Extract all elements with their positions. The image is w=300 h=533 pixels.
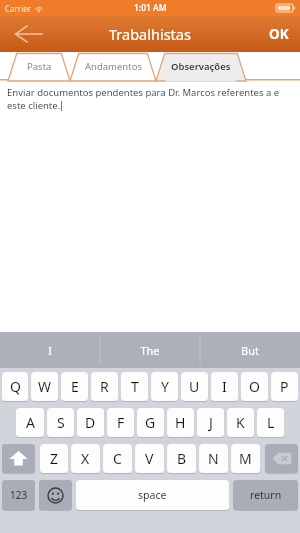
- button[interactable]: Z: [40, 444, 68, 473]
- staticText: 123: [10, 488, 28, 502]
- staticText: But: [241, 343, 259, 358]
- staticText: return: [250, 488, 282, 502]
- button[interactable]: The: [100, 332, 200, 368]
- staticText: S: [57, 413, 65, 432]
- staticText: R: [100, 377, 109, 396]
- staticText: The: [140, 343, 160, 358]
- staticText: K: [236, 413, 245, 432]
- button[interactable]: I: [211, 372, 238, 401]
- button[interactable]: S: [47, 408, 74, 437]
- staticText: D: [85, 413, 96, 432]
- button[interactable]: F: [107, 408, 134, 437]
- button[interactable]: M: [231, 444, 260, 473]
- staticText: Observações: [171, 60, 231, 73]
- staticText: B: [177, 449, 187, 468]
- button[interactable]: I: [0, 332, 100, 368]
- button[interactable]: Shift: [2, 444, 35, 473]
- staticText: E: [71, 377, 79, 396]
- button[interactable]: 123: [2, 480, 35, 510]
- button[interactable]: space: [76, 480, 229, 510]
- button[interactable]: X: [71, 444, 100, 473]
- button[interactable]: Observações: [156, 52, 246, 81]
- staticText: Q: [10, 377, 21, 396]
- staticText: 1:01 AM: [134, 2, 167, 14]
- staticText: Trabalhistas: [109, 24, 191, 44]
- staticText: U: [189, 377, 200, 396]
- staticText: OK: [269, 25, 289, 43]
- button[interactable]: T: [121, 372, 148, 401]
- staticText: G: [145, 413, 156, 432]
- staticText: L: [267, 413, 275, 432]
- button[interactable]: O: [241, 372, 268, 401]
- button[interactable]: P: [271, 372, 298, 401]
- staticText: I: [48, 343, 52, 358]
- staticText: Enviar documentos pendentes para Dr. Mar…: [7, 86, 280, 99]
- button[interactable]: Pasta: [8, 52, 70, 81]
- button[interactable]: N: [199, 444, 228, 473]
- button[interactable]: Andamentos: [70, 52, 156, 81]
- staticText: X: [81, 449, 90, 468]
- button[interactable]: G: [137, 408, 164, 437]
- staticText: W: [38, 377, 52, 396]
- staticText: V: [145, 449, 154, 468]
- button[interactable]: W: [31, 372, 58, 401]
- staticText: M: [239, 449, 252, 468]
- button[interactable]: Q: [2, 372, 28, 401]
- button[interactable]: E: [61, 372, 88, 401]
- staticText: A: [26, 413, 35, 432]
- staticText: C: [113, 449, 122, 468]
- staticText: T: [131, 377, 139, 396]
- button[interactable]: Y: [151, 372, 178, 401]
- staticText: J: [209, 413, 213, 432]
- staticText: Z: [50, 449, 59, 468]
- staticText: space: [138, 488, 167, 502]
- staticText: I: [222, 377, 227, 396]
- button[interactable]: D: [77, 408, 104, 437]
- button[interactable]: L: [257, 408, 284, 437]
- staticText: N: [208, 449, 219, 468]
- staticText: Andamentos: [85, 60, 142, 73]
- button[interactable]: B: [167, 444, 196, 473]
- button[interactable]: But: [200, 332, 300, 368]
- button[interactable]: R: [91, 372, 118, 401]
- button[interactable]: Backspace: [265, 444, 298, 473]
- staticText: Pasta: [27, 60, 52, 73]
- button[interactable]: OK: [262, 19, 296, 49]
- button[interactable]: J: [197, 408, 224, 437]
- button[interactable]: H: [167, 408, 194, 437]
- button[interactable]: K: [227, 408, 254, 437]
- button[interactable]: U: [181, 372, 208, 401]
- staticText: O: [249, 377, 260, 396]
- staticText: P: [280, 377, 289, 396]
- staticText: F: [117, 413, 125, 432]
- staticText: Carrier: [5, 3, 32, 14]
- staticText: Y: [161, 377, 169, 396]
- staticText: H: [175, 413, 186, 432]
- button[interactable]: Back: [8, 19, 46, 49]
- button[interactable]: A: [16, 408, 44, 437]
- staticText: este cliente.: [7, 99, 61, 112]
- button[interactable]: C: [103, 444, 132, 473]
- button[interactable]: Emoji: [39, 480, 72, 510]
- button[interactable]: return: [233, 480, 298, 510]
- button[interactable]: V: [135, 444, 164, 473]
